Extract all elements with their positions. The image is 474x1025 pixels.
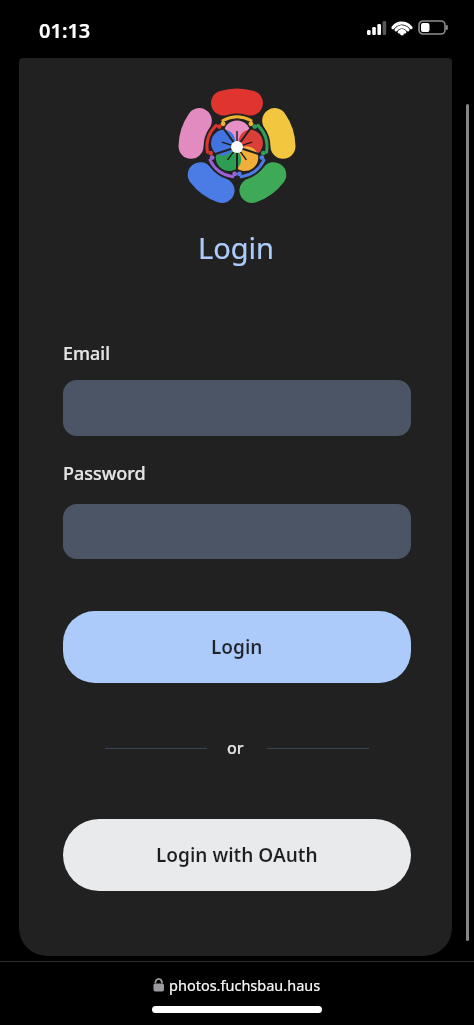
button[interactable]: photos.fuchsbau.haus: [0, 965, 474, 1005]
button[interactable]: Login: [63, 611, 411, 683]
staticText: 01:13: [39, 17, 91, 44]
staticText: or: [227, 737, 244, 759]
staticText: Login with OAuth: [156, 842, 318, 868]
staticText: Login: [211, 634, 263, 660]
staticText: photos.fuchsbau.haus: [169, 975, 321, 995]
button[interactable]: [63, 504, 411, 559]
button[interactable]: [63, 380, 411, 436]
staticText: Login: [198, 228, 274, 267]
staticText: Email: [63, 341, 111, 366]
button[interactable]: Login with OAuth: [63, 819, 411, 891]
staticText: Password: [63, 461, 146, 486]
